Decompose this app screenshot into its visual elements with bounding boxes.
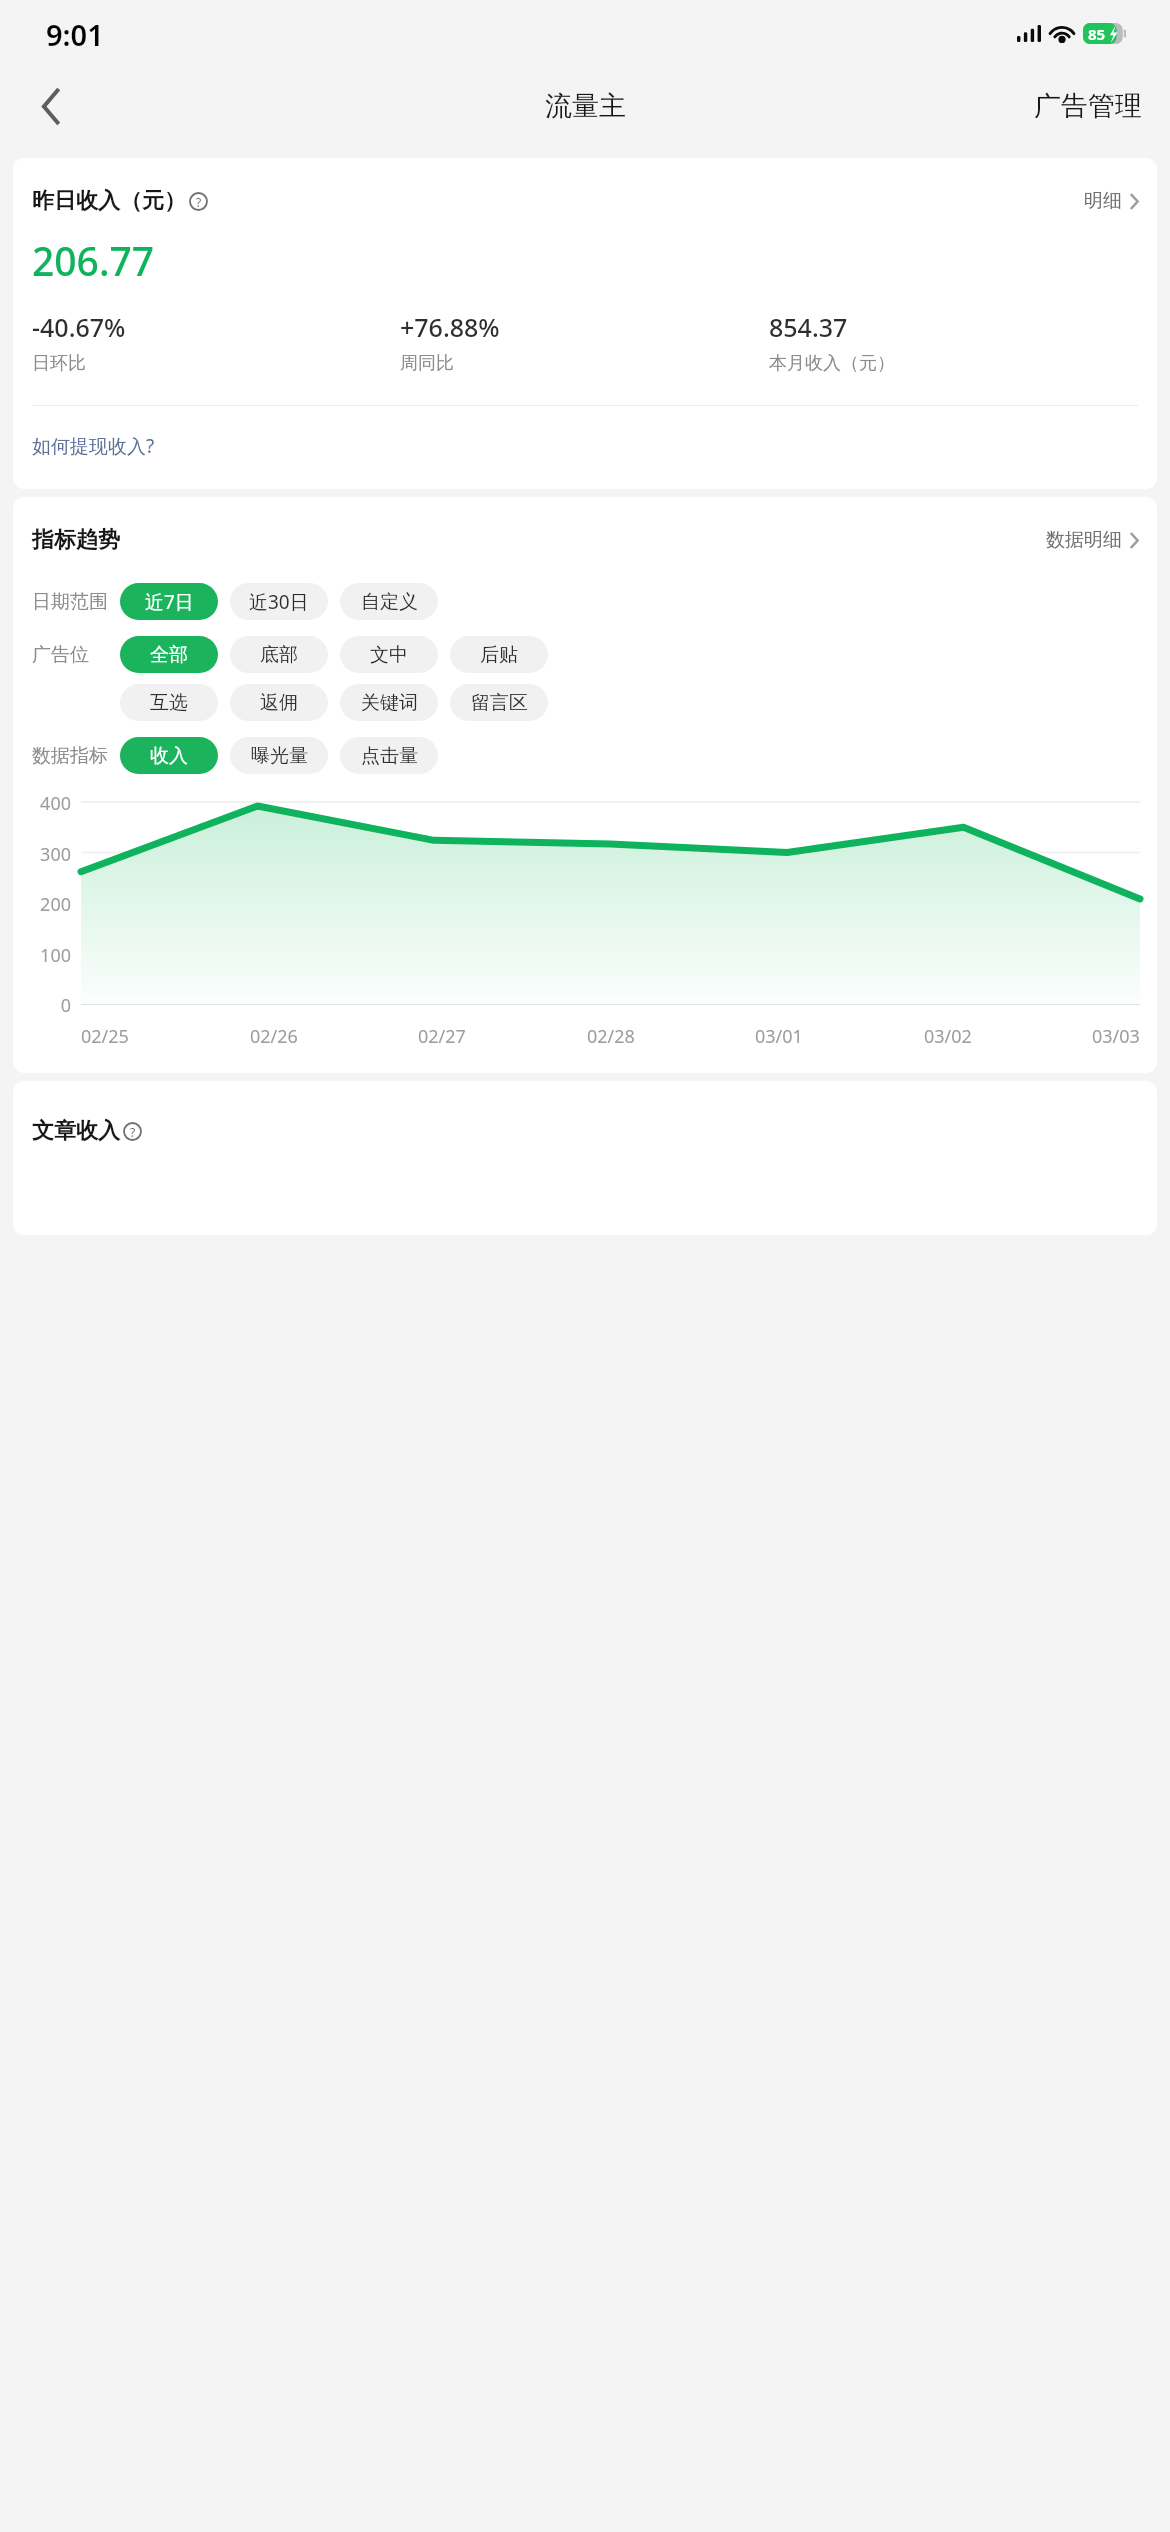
staticText: ? (130, 1124, 136, 1140)
button[interactable]: 近7日 (120, 583, 218, 620)
staticText: 后贴 (480, 643, 518, 667)
button[interactable]: 明细 (1084, 184, 1138, 218)
staticText: 03/02 (924, 1024, 972, 1049)
staticText: 9:01 (46, 15, 104, 54)
button[interactable]: 互选 (120, 684, 218, 721)
button[interactable]: 近30日 (230, 583, 328, 620)
staticText: 文章收入 (32, 1117, 120, 1145)
staticText: 400 (31, 791, 71, 816)
staticText: 自定义 (361, 590, 418, 614)
staticText: 关键词 (361, 691, 418, 715)
button[interactable]: 后贴 (450, 636, 548, 673)
staticText: 02/28 (587, 1024, 635, 1049)
staticText: 广告位 (32, 643, 89, 667)
button[interactable]: 点击量 (340, 737, 438, 774)
staticText: 206.77 (32, 234, 155, 287)
button[interactable]: 广告管理 (1028, 77, 1148, 135)
staticText: 如何提现收入? (32, 433, 155, 459)
button[interactable]: 自定义 (340, 583, 438, 620)
button[interactable]: 全部 (120, 636, 218, 673)
staticText: 03/03 (1092, 1024, 1140, 1049)
staticText: 300 (31, 842, 71, 867)
staticText: 全部 (150, 643, 188, 667)
staticText: 底部 (260, 643, 298, 667)
staticText: 本月收入（元） (769, 352, 895, 375)
staticText: 数据明细 (1046, 528, 1122, 552)
button[interactable]: Help (189, 192, 208, 211)
button[interactable]: 文章收入 (32, 1117, 142, 1145)
staticText: 收入 (150, 744, 188, 768)
staticText: 数据指标 (32, 744, 108, 768)
button[interactable]: 如何提现收入? (32, 430, 155, 462)
staticText: 昨日收入（元） (32, 187, 186, 215)
staticText: 文中 (370, 643, 408, 667)
staticText: 日期范围 (32, 590, 108, 614)
staticText: 流量主 (545, 89, 626, 123)
button[interactable]: Help (123, 1122, 142, 1141)
staticText: ? (196, 194, 202, 210)
staticText: 曝光量 (251, 744, 308, 768)
staticText: 02/26 (250, 1024, 298, 1049)
button[interactable]: 留言区 (450, 684, 548, 721)
staticText: 02/25 (81, 1024, 129, 1049)
button[interactable]: 文中 (340, 636, 438, 673)
staticText: 200 (31, 892, 71, 917)
staticText: 明细 (1084, 189, 1122, 213)
button[interactable]: 收入 (120, 737, 218, 774)
staticText: 周同比 (400, 352, 454, 375)
button[interactable]: Back (20, 75, 82, 137)
staticText: 02/27 (418, 1024, 466, 1049)
staticText: 100 (31, 943, 71, 968)
staticText: 返佣 (260, 691, 298, 715)
staticText: -40.67% (32, 310, 126, 344)
staticText: 日环比 (32, 352, 86, 375)
button[interactable]: 指标趋势 (32, 526, 120, 554)
staticText: 03/01 (755, 1024, 803, 1049)
staticText: 点击量 (361, 744, 418, 768)
button[interactable]: 数据明细 (1046, 523, 1138, 557)
staticText: 85 (1088, 24, 1106, 44)
button[interactable]: 曝光量 (230, 737, 328, 774)
staticText: 近7日 (145, 589, 194, 615)
staticText: 互选 (150, 691, 188, 715)
staticText: 留言区 (471, 691, 528, 715)
button[interactable]: 关键词 (340, 684, 438, 721)
button[interactable]: 返佣 (230, 684, 328, 721)
staticText: 0 (31, 993, 71, 1018)
staticText: 指标趋势 (32, 526, 120, 554)
button[interactable]: 昨日收入（元） (32, 187, 208, 215)
staticText: 近30日 (249, 589, 309, 615)
button[interactable]: 底部 (230, 636, 328, 673)
staticText: 854.37 (769, 310, 848, 344)
staticText: 广告管理 (1034, 89, 1142, 123)
staticText: +76.88% (400, 310, 500, 344)
